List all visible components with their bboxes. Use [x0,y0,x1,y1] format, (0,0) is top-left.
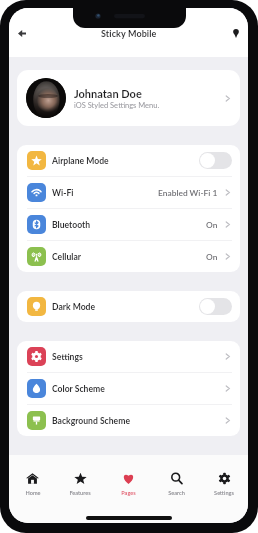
button[interactable]: Wi-Fi [17,177,240,208]
staticText: Cellular [52,252,82,262]
button[interactable]: Features [56,455,104,523]
button[interactable]: Background Scheme [17,405,240,436]
staticText: iOS Styled Settings Menu. [74,101,160,110]
button[interactable]: Settings [200,455,248,523]
staticText: Color Scheme [52,384,105,394]
button[interactable]: Toggle off [199,298,232,315]
staticText: Enabled Wi-Fi 1 [158,188,218,198]
button[interactable]: Toggle off [199,152,232,169]
staticText: Background Scheme [52,416,130,426]
button[interactable]: Cellular [17,241,240,272]
button[interactable]: Search [152,455,200,523]
button[interactable]: Airplane Mode [17,145,240,176]
button[interactable]: Settings [17,341,240,372]
staticText: Johnatan Doe [74,87,142,100]
staticText: Settings [52,352,83,362]
button[interactable]: Location [224,21,248,45]
staticText: Wi-Fi [52,188,74,198]
staticText: Pages [121,489,136,496]
button[interactable]: Back [10,21,34,45]
button[interactable]: Pages [104,455,152,523]
button[interactable]: Bluetooth [17,209,240,240]
staticText: Home [25,489,41,496]
button[interactable]: Johnatan Doe [17,70,240,126]
button[interactable]: Dark Mode [17,291,240,322]
staticText: On [206,220,218,230]
button[interactable]: Color Scheme [17,373,240,404]
staticText: Bluetooth [52,220,91,230]
staticText: On [206,252,218,262]
staticText: Sticky Mobile [101,28,157,39]
staticText: Search [168,489,185,496]
button[interactable]: Home [9,455,56,523]
staticText: Settings [214,489,234,496]
staticText: Dark Mode [52,302,96,312]
staticText: Features [69,489,91,496]
staticText: Airplane Mode [52,156,109,166]
